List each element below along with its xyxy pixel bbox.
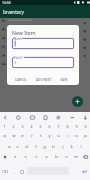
staticText: r (31, 133, 33, 139)
staticText: 5 (39, 124, 42, 129)
staticText: 1 (3, 124, 6, 129)
staticText: 2 (12, 124, 15, 129)
button[interactable]: u (54, 131, 63, 141)
staticText: . (73, 169, 75, 174)
button[interactable]: 7 (54, 121, 63, 131)
staticText: 9 (75, 124, 78, 129)
button[interactable]: g (40, 141, 49, 152)
staticText: n (65, 154, 68, 160)
button[interactable]: Clipboard (42, 114, 48, 120)
button[interactable]: k (67, 141, 76, 152)
staticText: ?123 (2, 170, 9, 174)
button[interactable]: Shift (0, 152, 9, 162)
button[interactable]: q (0, 131, 9, 141)
staticText: CANCEL (15, 78, 28, 82)
button[interactable]: z (9, 152, 20, 162)
button[interactable]: m (71, 152, 81, 162)
staticText: m (74, 154, 78, 160)
button[interactable]: a (5, 141, 13, 152)
button[interactable]: Enter (78, 167, 90, 176)
button[interactable]: 9 (72, 121, 81, 131)
button[interactable]: j (58, 141, 67, 152)
staticText: o (75, 133, 78, 139)
staticText: w (12, 133, 16, 139)
button[interactable]: Period (70, 167, 78, 176)
button[interactable]: 6 (45, 121, 54, 131)
button[interactable]: Comma (11, 167, 18, 176)
staticText: 3 (21, 124, 24, 129)
staticText: p (84, 133, 87, 139)
button[interactable]: e (18, 131, 27, 141)
staticText: 1 (14, 60, 17, 65)
button[interactable]: Emoji (18, 167, 26, 176)
staticText: j (62, 144, 64, 150)
staticText: t (40, 133, 42, 139)
button[interactable]: 1 (0, 121, 9, 131)
staticText: ADD NEXT (36, 78, 52, 82)
button[interactable]: h (49, 141, 58, 152)
staticText: l (80, 144, 82, 150)
button[interactable]: s (13, 141, 22, 152)
button[interactable]: o (72, 131, 81, 141)
button[interactable]: Settings (55, 114, 61, 120)
staticText: 4 (30, 124, 33, 129)
staticText: c (35, 154, 38, 160)
button[interactable]: l (76, 141, 85, 152)
staticText: g (43, 144, 46, 150)
button[interactable]: 5 (36, 121, 45, 131)
staticText: u (57, 133, 60, 139)
button[interactable]: t (36, 131, 45, 141)
staticText: 14:56 (2, 0, 11, 5)
staticText: h (52, 144, 55, 150)
button[interactable]: ADD NEXT (34, 77, 54, 83)
button[interactable]: Add item (72, 96, 83, 107)
staticText: b (55, 154, 58, 160)
button[interactable]: SAVE (58, 77, 70, 83)
staticText: SAVE (60, 78, 68, 82)
staticText: v (45, 154, 48, 160)
button[interactable]: CANCEL (13, 77, 30, 83)
button[interactable]: b (51, 152, 61, 162)
button[interactable]: Themes (15, 114, 21, 120)
button[interactable]: d (22, 141, 31, 152)
button[interactable]: More (82, 114, 88, 120)
button[interactable]: 2 (9, 121, 18, 131)
staticText: d (25, 144, 28, 150)
button[interactable]: Translate (69, 114, 75, 120)
staticText: k (70, 144, 73, 150)
staticText: 8 (66, 124, 69, 129)
button[interactable]: 3 (18, 121, 27, 131)
staticText: 7 (57, 124, 60, 129)
button[interactable]: f (31, 141, 40, 152)
button[interactable]: 8 (63, 121, 72, 131)
button[interactable]: p (81, 131, 90, 141)
staticText: 6 (48, 124, 51, 129)
button[interactable]: v (41, 152, 51, 162)
button[interactable]: w (9, 131, 18, 141)
button[interactable]: y (45, 131, 54, 141)
button[interactable]: 0 (81, 121, 90, 131)
button[interactable]: 4 (27, 121, 36, 131)
staticText: New Item (12, 29, 36, 36)
staticText: a (8, 144, 11, 150)
staticText: Name (14, 37, 23, 41)
staticText: i (67, 133, 69, 139)
button[interactable]: x (20, 152, 31, 162)
staticText: y (48, 133, 51, 139)
button[interactable]: Back (2, 114, 8, 120)
button[interactable]: Symbols (0, 167, 11, 176)
button[interactable]: c (31, 152, 41, 162)
button[interactable]: n (61, 152, 71, 162)
staticText: f (35, 144, 37, 150)
staticText: 0 (84, 124, 87, 129)
button[interactable]: r (27, 131, 36, 141)
staticText: x (24, 154, 27, 160)
staticText: Inventory (3, 9, 24, 15)
button[interactable]: Backspace (81, 152, 90, 162)
button[interactable]: i (63, 131, 72, 141)
button[interactable]: GIF (29, 114, 35, 120)
staticText: q (3, 133, 6, 139)
staticText: z (14, 154, 16, 160)
staticText: , (14, 169, 16, 174)
